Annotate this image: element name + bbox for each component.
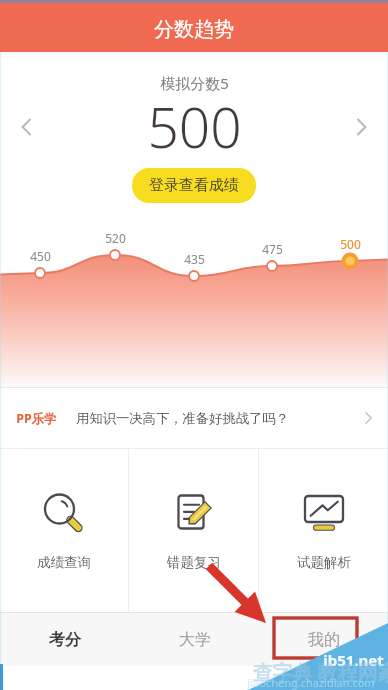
staticText: ib51.net bbox=[323, 650, 384, 670]
button[interactable]: 考分 bbox=[0, 613, 130, 666]
staticText: 考分 bbox=[49, 630, 81, 650]
button[interactable]: 错题复习 bbox=[129, 449, 258, 612]
staticText: 大学 bbox=[179, 630, 211, 650]
staticText: 分数趋势 bbox=[154, 17, 234, 42]
button[interactable]: Next score bbox=[340, 106, 382, 148]
button[interactable]: 成绩查询 bbox=[0, 449, 128, 612]
staticText: 435 bbox=[184, 251, 205, 267]
button[interactable]: PP乐学 bbox=[0, 388, 388, 448]
staticText: 我的 bbox=[308, 630, 340, 650]
button[interactable]: 试题解析 bbox=[259, 449, 388, 612]
staticText: jiaocheng.chazidian.com bbox=[247, 675, 375, 690]
staticText: 475 bbox=[262, 241, 283, 257]
button[interactable]: 大学 bbox=[130, 613, 259, 666]
button[interactable]: 我的 bbox=[259, 613, 388, 666]
button[interactable]: 登录查看成绩 bbox=[132, 168, 256, 203]
staticText: 450 bbox=[30, 248, 51, 264]
staticText: 成绩查询 bbox=[37, 554, 91, 571]
staticText: 试题解析 bbox=[297, 554, 351, 571]
staticText: 520 bbox=[105, 230, 126, 246]
button[interactable]: Previous score bbox=[6, 106, 48, 148]
staticText: 用知识一决高下，准备好挑战了吗？ bbox=[76, 410, 289, 427]
staticText: 500 bbox=[147, 89, 242, 164]
staticText: PP乐学 bbox=[16, 410, 57, 427]
staticText: 500 bbox=[340, 236, 361, 252]
staticText: 登录查看成绩 bbox=[149, 176, 239, 195]
staticText: 查字典 教程网家 bbox=[252, 659, 388, 686]
staticText: 模拟分数5 bbox=[160, 73, 229, 93]
staticText: 错题复习 bbox=[167, 554, 221, 571]
